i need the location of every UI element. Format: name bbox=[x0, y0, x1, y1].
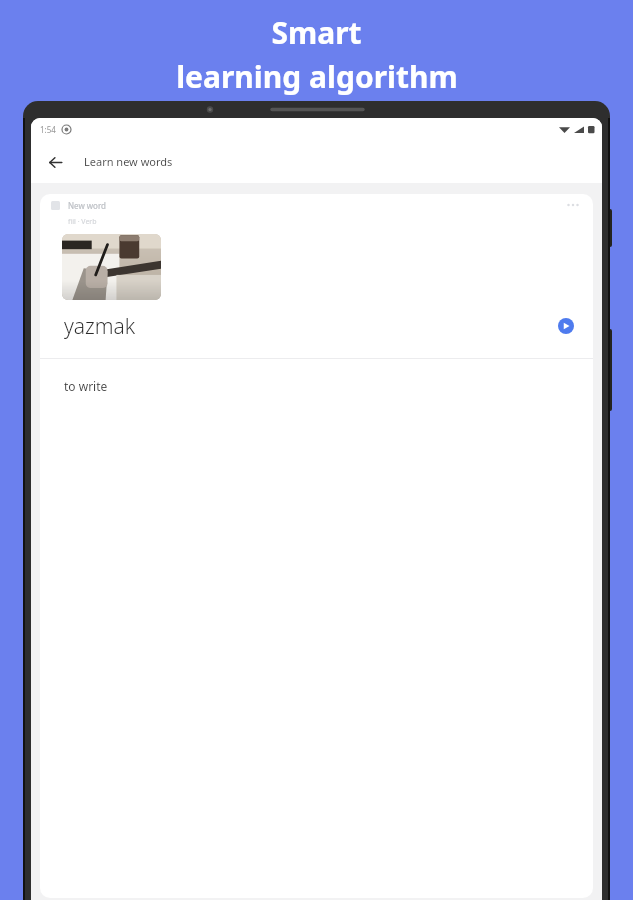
staticText: to write bbox=[64, 378, 108, 394]
staticText: learning algorithm bbox=[176, 56, 458, 97]
button[interactable]: Play pronunciation bbox=[553, 313, 579, 339]
button[interactable] bbox=[62, 234, 161, 300]
staticText: fiil · Verb bbox=[68, 217, 97, 227]
button[interactable]: Back bbox=[41, 148, 69, 176]
staticText: 1:54 bbox=[40, 124, 56, 135]
staticText: Smart bbox=[271, 12, 362, 53]
staticText: yazmak bbox=[64, 312, 136, 341]
staticText: New word bbox=[68, 200, 106, 211]
staticText: Learn new words bbox=[84, 154, 173, 169]
button[interactable]: More options bbox=[563, 195, 583, 215]
